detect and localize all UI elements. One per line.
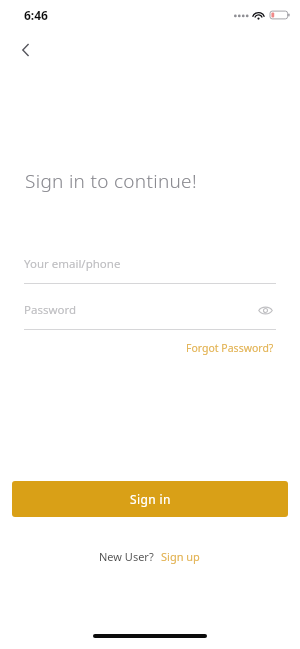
staticText: Sign up — [161, 549, 200, 564]
staticText: 6:46 — [24, 7, 48, 23]
staticText: New User? — [99, 549, 154, 564]
staticText: Your email/phone — [24, 256, 276, 272]
staticText: Password — [24, 302, 254, 318]
button[interactable]: Sign up — [159, 547, 202, 566]
button[interactable]: Back — [10, 34, 42, 66]
button[interactable]: Forgot Password? — [184, 339, 276, 357]
staticText: Forgot Password? — [186, 341, 274, 355]
staticText: Sign in — [130, 491, 171, 507]
button[interactable]: Sign in — [12, 481, 288, 517]
button[interactable]: Show password — [254, 299, 276, 321]
staticText: Sign in to continue! — [25, 168, 197, 194]
